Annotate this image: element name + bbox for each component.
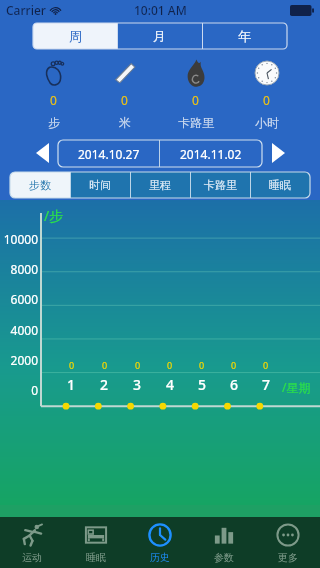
button[interactable]: 运动	[0, 517, 64, 568]
staticText: 步数	[29, 178, 51, 192]
staticText: 时间	[89, 178, 111, 192]
staticText: 0	[50, 92, 57, 108]
staticText: /步	[44, 206, 64, 225]
staticText: 2	[100, 375, 109, 394]
button[interactable]: 睡眠	[250, 172, 310, 198]
button[interactable]: 月	[117, 23, 202, 49]
button[interactable]: 更多	[256, 517, 320, 568]
staticText: 0	[121, 92, 128, 108]
button[interactable]: 年	[202, 23, 287, 49]
staticText: 卡路里	[178, 115, 214, 130]
staticText: 6000	[0, 291, 38, 307]
staticText: 0	[231, 359, 237, 371]
staticText: 10:01 AM	[134, 2, 187, 18]
staticText: 10000	[0, 231, 38, 247]
staticText: 小时	[255, 115, 279, 130]
button[interactable]: 参数	[192, 517, 256, 568]
staticText: 7	[262, 375, 271, 394]
button[interactable]: 0	[18, 52, 89, 130]
staticText: 2000	[0, 352, 38, 368]
staticText: 5	[198, 375, 207, 394]
staticText: 2014.10.27	[78, 146, 140, 162]
staticText: Carrier	[6, 2, 46, 18]
staticText: 8000	[0, 261, 38, 277]
button[interactable]: 0	[160, 52, 231, 130]
staticText: 3	[133, 375, 142, 394]
staticText: /星期	[282, 379, 311, 395]
button[interactable]: 睡眠	[64, 517, 128, 568]
staticText: 步	[48, 115, 60, 130]
staticText: 米	[119, 115, 131, 130]
staticText: 4	[166, 375, 175, 394]
staticText: 运动	[22, 551, 42, 564]
staticText: 0	[263, 92, 270, 108]
staticText: 里程	[149, 178, 171, 192]
button[interactable]: 卡路里	[190, 172, 250, 198]
staticText: 年	[238, 28, 251, 44]
staticText: 周	[69, 28, 82, 44]
staticText: 卡路里	[204, 178, 237, 192]
staticText: 6	[230, 375, 239, 394]
button[interactable]: Previous week	[31, 139, 53, 167]
staticText: 1	[67, 375, 76, 394]
button[interactable]: Next week	[267, 139, 289, 167]
staticText: 2014.11.02	[180, 146, 242, 162]
button[interactable]: 步数	[10, 172, 70, 198]
button[interactable]: 历史	[128, 517, 192, 568]
button[interactable]: 里程	[130, 172, 190, 198]
button[interactable]: 2014.11.02	[160, 140, 262, 167]
staticText: 睡眠	[269, 178, 291, 192]
staticText: 月	[153, 28, 166, 44]
staticText: 历史	[150, 551, 170, 564]
staticText: 0	[102, 359, 108, 371]
staticText: 4000	[0, 322, 38, 338]
button[interactable]: 0	[231, 52, 302, 130]
button[interactable]: 0	[89, 52, 160, 130]
staticText: 0	[199, 359, 205, 371]
staticText: 0	[263, 359, 269, 371]
staticText: 0	[0, 382, 38, 398]
staticText: 更多	[278, 551, 298, 564]
staticText: 0	[69, 359, 75, 371]
staticText: 参数	[214, 551, 234, 564]
button[interactable]: 周	[33, 23, 117, 49]
staticText: 0	[192, 92, 199, 108]
staticText: 睡眠	[86, 551, 106, 564]
button[interactable]: 时间	[70, 172, 130, 198]
button[interactable]: 2014.10.27	[58, 140, 159, 167]
staticText: 0	[135, 359, 141, 371]
staticText: 0	[167, 359, 173, 371]
